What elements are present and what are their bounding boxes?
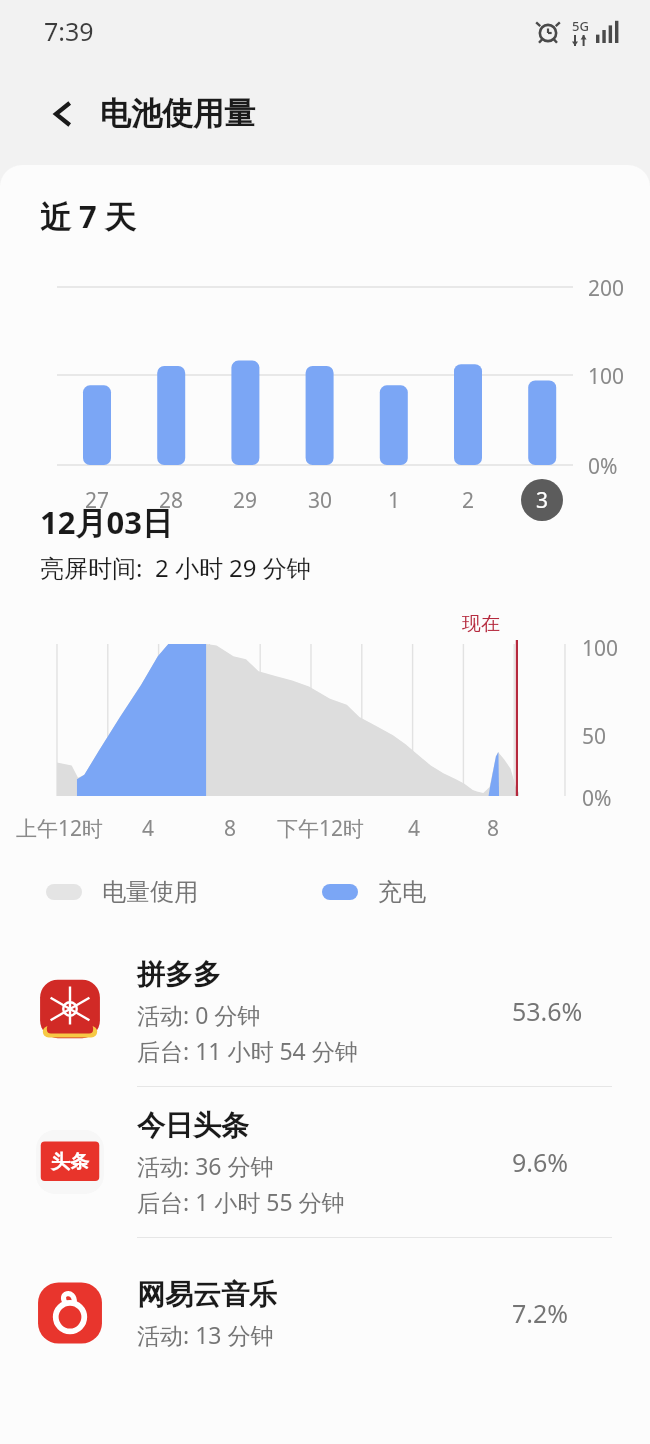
staticText: 活动: 0 分钟 <box>137 999 261 1030</box>
staticText: 电池使用量 <box>100 94 255 133</box>
staticText: 4 <box>142 814 155 843</box>
staticText: 5G <box>572 17 589 35</box>
button[interactable]: 27 <box>76 479 118 521</box>
staticText: 200 <box>588 274 625 303</box>
staticText: 活动: 13 分钟 <box>137 1319 274 1350</box>
button[interactable]: 29 <box>224 479 266 521</box>
staticText: 3 <box>536 486 549 515</box>
staticText: 上午12时 <box>16 814 104 843</box>
staticText: 后台: 1 小时 55 分钟 <box>137 1186 345 1217</box>
button[interactable]: 2 <box>447 479 489 521</box>
staticText: 电量使用 <box>102 877 198 907</box>
button[interactable]: 拼多多 <box>0 936 650 1086</box>
staticText: 下午12时 <box>277 814 365 843</box>
staticText: 0% <box>588 452 618 481</box>
staticText: 今日头条 <box>137 1108 249 1143</box>
staticText: 2 <box>462 486 475 515</box>
staticText: 28 <box>159 486 184 515</box>
staticText: 亮屏时间: 2 小时 29 分钟 <box>40 551 311 584</box>
staticText: 0% <box>582 784 612 813</box>
staticText: 7:39 <box>44 14 94 48</box>
staticText: 29 <box>233 486 258 515</box>
button[interactable]: 1 <box>373 479 415 521</box>
staticText: 后台: 11 小时 54 分钟 <box>137 1035 358 1066</box>
staticText: 9.6% <box>512 1145 612 1179</box>
staticText: 拼多多 <box>137 957 221 992</box>
button[interactable]: 3 <box>521 479 563 521</box>
staticText: 27 <box>85 486 110 515</box>
staticText: 7.2% <box>512 1296 612 1330</box>
staticText: 8 <box>487 814 500 843</box>
staticText: 53.6% <box>512 994 612 1028</box>
staticText: 1 <box>388 486 401 515</box>
staticText: 活动: 36 分钟 <box>137 1150 274 1181</box>
staticText: 12月03日 <box>40 501 173 543</box>
staticText: 30 <box>308 486 333 515</box>
button[interactable]: 网易云音乐 <box>0 1238 650 1388</box>
staticText: 充电 <box>378 877 426 907</box>
staticText: 8 <box>224 814 237 843</box>
button[interactable]: 28 <box>150 479 192 521</box>
button[interactable]: 30 <box>299 479 341 521</box>
staticText: 100 <box>582 634 619 663</box>
staticText: 100 <box>588 362 625 391</box>
staticText: 现在 <box>462 612 500 636</box>
staticText: 50 <box>582 722 607 751</box>
staticText: 近 7 天 <box>40 195 136 237</box>
staticText: 4 <box>408 814 421 843</box>
button[interactable]: Back <box>34 88 86 140</box>
staticText: 头条 <box>51 1150 89 1174</box>
staticText: 网易云音乐 <box>137 1277 277 1312</box>
button[interactable]: 头条 <box>0 1087 650 1237</box>
